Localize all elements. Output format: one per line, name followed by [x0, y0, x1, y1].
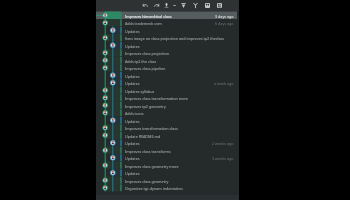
staticText: Improves class geometry more: [125, 164, 234, 169]
button[interactable]: Improves class transforms: [96, 147, 239, 155]
button[interactable]: More options: [171, 0, 178, 11]
button[interactable]: Stash: [213, 0, 225, 11]
button[interactable]: Update README.md: [96, 132, 239, 140]
button[interactable]: Improves class geometry: [96, 177, 239, 185]
staticText: Updates: [125, 81, 214, 86]
staticText: Updates: [125, 119, 234, 124]
staticText: Updates: [125, 156, 212, 161]
button[interactable]: Updates: [96, 42, 239, 50]
staticText: Improves class projection: [125, 51, 234, 56]
staticText: 6 days ago: [215, 21, 234, 26]
button[interactable]: fixes image on class projection and impr…: [96, 34, 239, 42]
staticText: Updates syllabus: [125, 89, 234, 94]
button[interactable]: Adds icons: [96, 109, 239, 117]
button[interactable]: Updates: [96, 72, 239, 80]
button[interactable]: Updates: [96, 154, 239, 162]
button[interactable]: Improves class transformation more: [96, 94, 239, 102]
staticText: Improves class transformation more: [125, 96, 234, 101]
button[interactable]: Updates: [96, 79, 239, 87]
button[interactable]: Adds tp2 the class: [96, 57, 239, 65]
button[interactable]: Improves tp2 geometry: [96, 102, 239, 110]
staticText: a week ago: [214, 81, 234, 86]
staticText: Update README.md: [125, 134, 234, 139]
staticText: Improves tp2 geometry: [125, 104, 234, 109]
button[interactable]: Organizes tgr-dynam indentation: [96, 184, 239, 192]
staticText: 2 weeks ago: [212, 141, 234, 146]
staticText: 3 days ago: [215, 14, 234, 19]
staticText: Adds tp2 the class: [125, 59, 234, 64]
staticText: Improves class pipeline: [125, 66, 234, 71]
staticText: Updates: [125, 141, 212, 146]
button[interactable]: Updates syllabus: [96, 87, 239, 95]
staticText: Improves hierarchical class: [125, 14, 215, 19]
button[interactable]: Push: [162, 0, 171, 11]
staticText: Updates: [125, 171, 234, 176]
button[interactable]: Improves class projection: [96, 49, 239, 57]
button[interactable]: Undo: [140, 0, 151, 11]
staticText: Updates: [125, 74, 234, 79]
button[interactable]: Updates: [96, 169, 239, 177]
staticText: Adds icons: [125, 111, 234, 116]
button[interactable]: Adds trademesh.com: [96, 19, 239, 27]
staticText: 3 weeks ago: [212, 156, 234, 161]
button[interactable]: Updates: [96, 27, 239, 35]
button[interactable]: Improves class pipeline: [96, 64, 239, 72]
staticText: Organizes tgr-dynam indentation: [125, 186, 234, 191]
button[interactable]: Redo: [151, 0, 162, 11]
button[interactable]: Merge: [201, 0, 213, 11]
button[interactable]: Branch: [189, 0, 201, 11]
staticText: fixes image on class projection and impr…: [125, 36, 234, 41]
button[interactable]: Improves transformation class: [96, 124, 239, 132]
button[interactable]: Improves hierarchical class: [96, 12, 239, 20]
staticText: Updates: [125, 44, 234, 49]
staticText: Improves class transforms: [125, 149, 234, 154]
staticText: Adds trademesh.com: [125, 21, 215, 26]
staticText: Improves class geometry: [125, 179, 234, 184]
staticText: Improves transformation class: [125, 126, 234, 131]
button[interactable]: Improves class geometry more: [96, 162, 239, 170]
button[interactable]: Updates: [96, 139, 239, 147]
button[interactable]: Updates: [96, 117, 239, 125]
button[interactable]: Pull: [178, 0, 189, 11]
staticText: Updates: [125, 29, 234, 34]
